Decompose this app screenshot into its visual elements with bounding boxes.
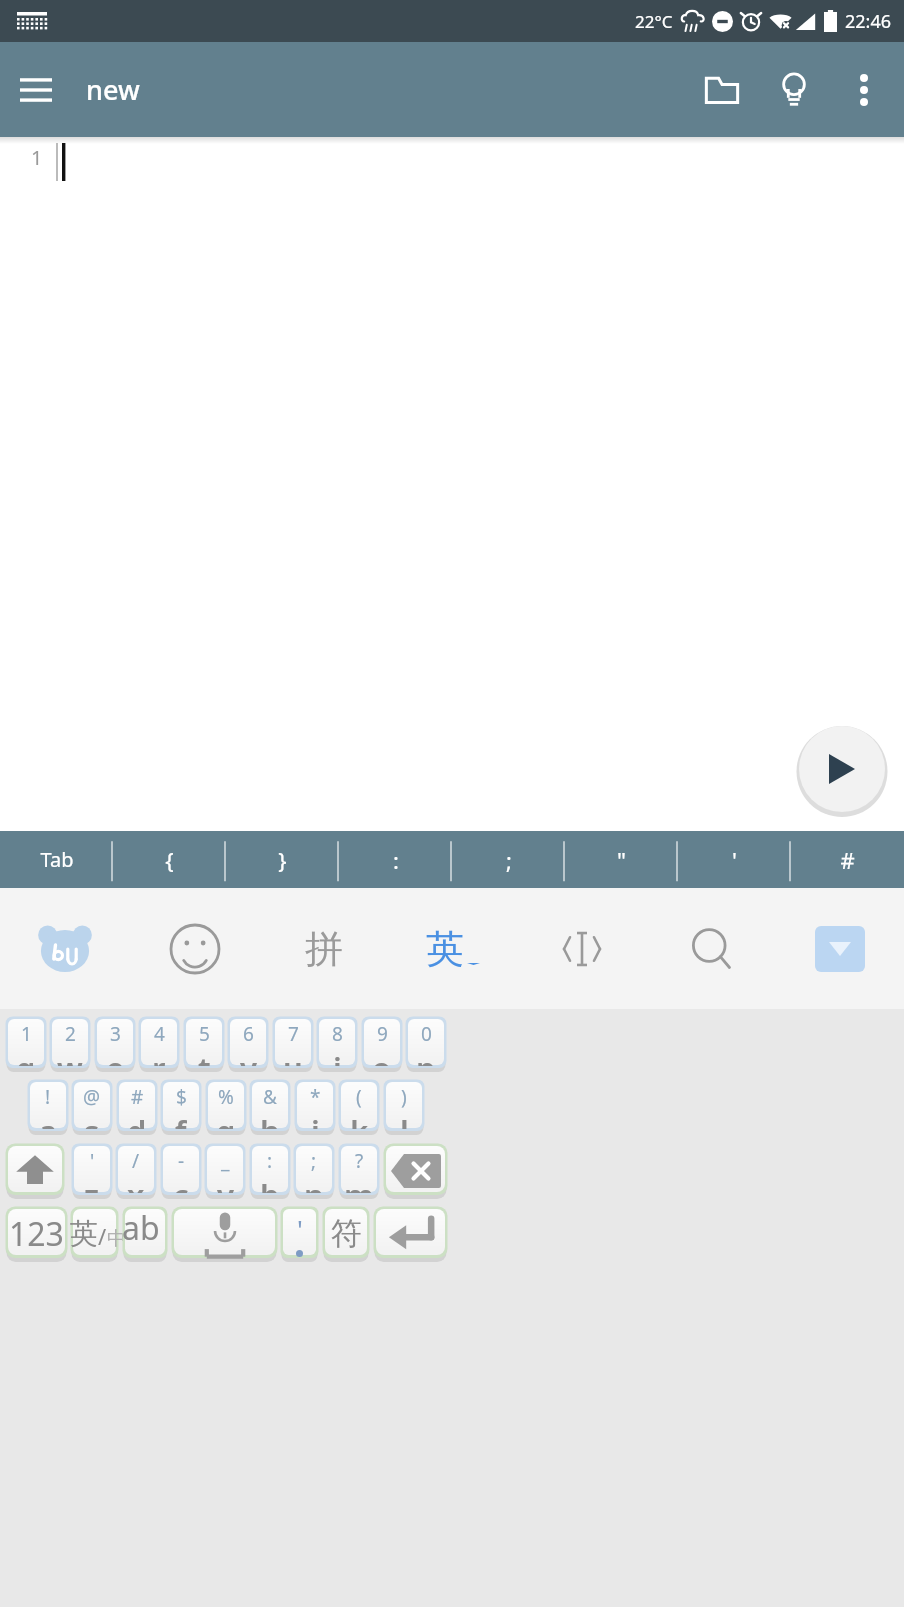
staticText: v bbox=[217, 1174, 234, 1193]
staticText: 3 bbox=[110, 1021, 121, 1047]
button[interactable]: ; bbox=[452, 831, 565, 888]
button[interactable]: : bbox=[339, 831, 452, 888]
button[interactable]: ' bbox=[280, 1206, 319, 1261]
button[interactable]: English layout bbox=[388, 888, 517, 1009]
button[interactable]: # bbox=[791, 831, 904, 888]
button[interactable]: Enter bbox=[373, 1206, 448, 1261]
button[interactable]: : bbox=[249, 1143, 291, 1198]
staticText: abc bbox=[122, 1206, 168, 1261]
staticText: 中 bbox=[107, 1227, 119, 1251]
button[interactable]: / bbox=[115, 1143, 157, 1198]
button[interactable]: 4 bbox=[138, 1016, 180, 1071]
staticText: r bbox=[152, 1047, 166, 1066]
button[interactable]: 英 bbox=[70, 1206, 119, 1261]
staticText: & bbox=[263, 1084, 277, 1110]
button[interactable]: * bbox=[294, 1079, 336, 1134]
staticText: c bbox=[173, 1174, 189, 1193]
button[interactable]: 8 bbox=[316, 1016, 358, 1071]
staticText: 2 bbox=[65, 1021, 76, 1047]
staticText: @ bbox=[83, 1084, 101, 1110]
staticText: l bbox=[400, 1110, 409, 1129]
staticText: y bbox=[240, 1047, 257, 1066]
button[interactable]: Baidu input bbox=[0, 888, 130, 1009]
staticText: f bbox=[175, 1110, 187, 1129]
button[interactable]: 符 bbox=[322, 1206, 370, 1261]
button[interactable]: ' bbox=[678, 831, 791, 888]
button[interactable]: Run bbox=[796, 723, 888, 815]
button[interactable]: Open file bbox=[686, 54, 758, 126]
staticText: ; bbox=[311, 1148, 317, 1174]
button[interactable]: } bbox=[226, 831, 339, 888]
button[interactable]: % bbox=[205, 1079, 247, 1134]
staticText: 22:46 bbox=[845, 9, 892, 34]
staticText: } bbox=[278, 845, 287, 875]
button[interactable]: ) bbox=[383, 1079, 425, 1134]
button[interactable]: abc bbox=[122, 1206, 168, 1261]
button[interactable]: - bbox=[160, 1143, 202, 1198]
staticText: % bbox=[218, 1084, 234, 1110]
button[interactable]: More options bbox=[830, 56, 898, 124]
button[interactable]: ? bbox=[338, 1143, 380, 1198]
button[interactable]: Move cursor bbox=[517, 888, 646, 1009]
staticText: m bbox=[344, 1174, 374, 1193]
button[interactable]: & bbox=[249, 1079, 291, 1134]
staticText: p bbox=[416, 1047, 436, 1066]
button[interactable]: ; bbox=[293, 1143, 335, 1198]
button[interactable]: Pinyin bbox=[259, 888, 388, 1009]
staticText: 123 bbox=[9, 1212, 64, 1256]
staticText: 1 bbox=[31, 144, 43, 171]
button[interactable]: 9 bbox=[361, 1016, 403, 1071]
button[interactable]: 3 bbox=[94, 1016, 136, 1071]
button[interactable]: Emoji bbox=[130, 888, 259, 1009]
staticText: " bbox=[617, 845, 626, 875]
staticText: ) bbox=[401, 1084, 407, 1110]
staticText: j bbox=[311, 1110, 320, 1129]
staticText: u bbox=[283, 1047, 303, 1066]
button[interactable]: 0 bbox=[405, 1016, 447, 1071]
button[interactable]: 1 bbox=[5, 1016, 47, 1071]
button[interactable]: 2 bbox=[49, 1016, 91, 1071]
staticText: - bbox=[178, 1148, 185, 1174]
staticText: n bbox=[304, 1174, 324, 1193]
button[interactable]: $ bbox=[160, 1079, 202, 1134]
button[interactable]: @ bbox=[71, 1079, 113, 1134]
button[interactable]: " bbox=[565, 831, 678, 888]
staticText: : bbox=[393, 845, 399, 875]
button[interactable]: ! bbox=[27, 1079, 69, 1134]
button[interactable]: Search bbox=[646, 888, 775, 1009]
button[interactable]: Shift bbox=[5, 1143, 65, 1198]
staticText: 符 bbox=[331, 1214, 362, 1253]
staticText: s bbox=[84, 1110, 100, 1129]
button[interactable]: Hide keyboard bbox=[775, 888, 904, 1009]
button[interactable]: Open navigation drawer bbox=[0, 54, 72, 126]
staticText: 8 bbox=[332, 1021, 343, 1047]
staticText: new bbox=[86, 71, 140, 108]
button[interactable]: ' bbox=[71, 1143, 113, 1198]
staticText: / bbox=[98, 1221, 107, 1251]
button[interactable]: 7 bbox=[272, 1016, 314, 1071]
staticText: Tab bbox=[40, 846, 74, 873]
staticText: 英 bbox=[70, 1216, 98, 1251]
button[interactable]: Backspace bbox=[383, 1143, 448, 1198]
staticText: e bbox=[106, 1047, 125, 1066]
staticText: o bbox=[372, 1047, 392, 1066]
button[interactable]: 5 bbox=[183, 1016, 225, 1071]
staticText: 0 bbox=[421, 1021, 432, 1047]
button[interactable]: 123 bbox=[5, 1206, 68, 1261]
staticText: / bbox=[132, 1148, 140, 1174]
button[interactable]: 6 bbox=[227, 1016, 269, 1071]
staticText: 9 bbox=[377, 1021, 388, 1047]
staticText: 6 bbox=[243, 1021, 254, 1047]
button[interactable]: Space bbox=[171, 1206, 278, 1261]
staticText: k bbox=[350, 1110, 369, 1129]
button[interactable]: ( bbox=[338, 1079, 380, 1134]
button[interactable]: { bbox=[113, 831, 226, 888]
button[interactable]: Tab bbox=[0, 831, 113, 888]
staticText: a bbox=[39, 1110, 58, 1129]
staticText: ? bbox=[355, 1148, 364, 1174]
button[interactable]: # bbox=[116, 1079, 158, 1134]
staticText: ' bbox=[732, 845, 737, 875]
button[interactable]: _ bbox=[204, 1143, 246, 1198]
button[interactable]: Toggle hint bbox=[758, 54, 830, 126]
staticText: 22°C bbox=[635, 10, 673, 33]
